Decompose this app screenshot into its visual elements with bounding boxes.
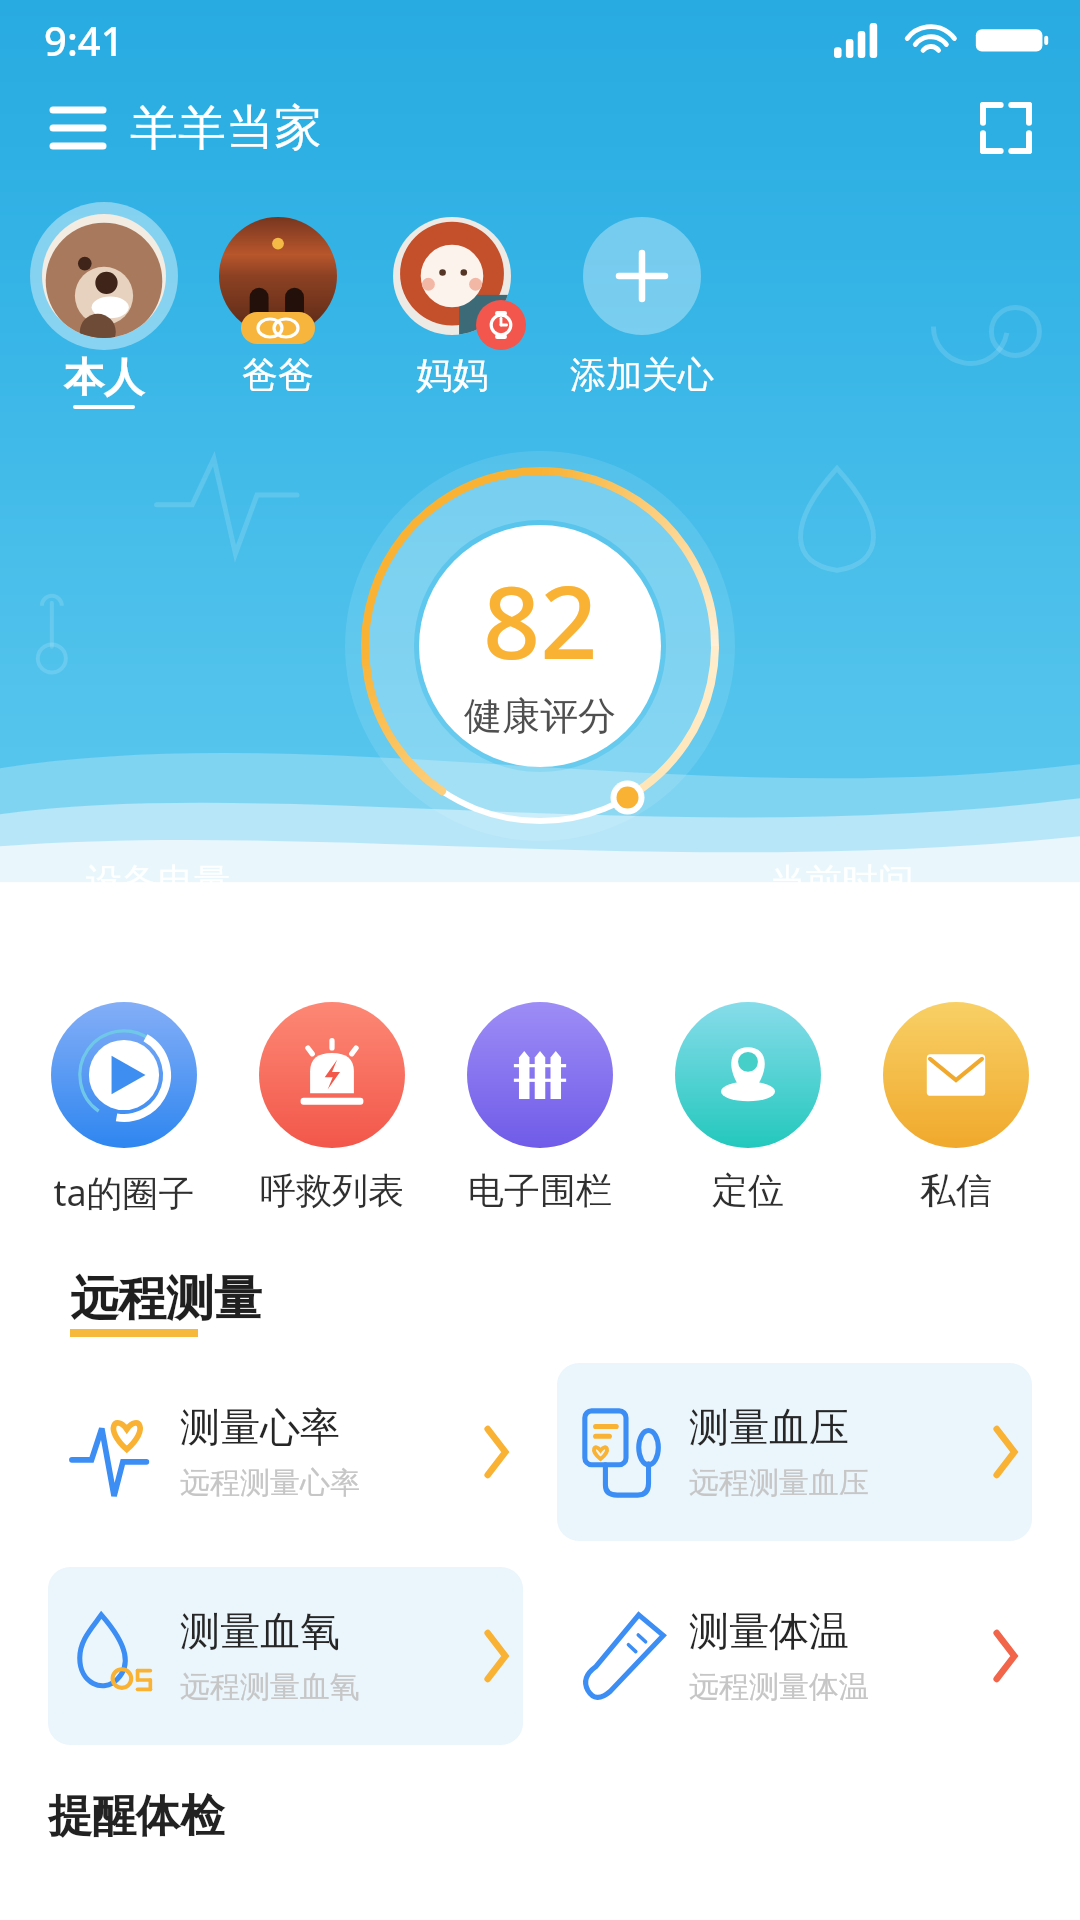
staticText: 远程测量心率 xyxy=(180,1464,360,1502)
staticText: 9:41 xyxy=(44,13,124,67)
staticText: 82 xyxy=(483,552,598,688)
staticText: 当前时间 xyxy=(770,859,914,904)
button[interactable]: Menu xyxy=(40,90,116,166)
staticText: 爸爸 xyxy=(242,352,314,397)
staticText: 健康评分 xyxy=(464,692,616,740)
other: Add care xyxy=(583,217,701,335)
staticText: 测量心率 xyxy=(180,1402,340,1452)
staticText: 私信 xyxy=(920,1168,992,1213)
staticText: 远程测量血压 xyxy=(689,1464,869,1502)
button[interactable]: 呼救列表 xyxy=(228,1002,436,1213)
button[interactable]: Scan QR code xyxy=(968,90,1044,166)
staticText: 呼救列表 xyxy=(260,1168,404,1213)
staticText: 添加关心 xyxy=(570,352,714,397)
button[interactable]: 定位 xyxy=(644,1002,852,1213)
staticText: 测量体温 xyxy=(689,1606,849,1656)
button[interactable]: ta的圈子 xyxy=(20,1002,228,1217)
staticText: 远程测量体温 xyxy=(689,1668,869,1706)
staticText: 远程测量 xyxy=(70,1269,262,1329)
button[interactable]: 测量血氧 xyxy=(48,1567,523,1745)
staticText: ta的圈子 xyxy=(53,1168,195,1217)
staticText: 电子围栏 xyxy=(468,1168,612,1213)
button[interactable]: 测量心率 xyxy=(48,1363,523,1541)
button[interactable]: 妈妈 xyxy=(378,202,526,397)
staticText: 本人 xyxy=(64,352,144,402)
button[interactable]: 爸爸 xyxy=(204,202,352,397)
staticText: 定位 xyxy=(712,1168,784,1213)
staticText: 羊羊当家 xyxy=(130,98,322,158)
staticText: 设备电量 xyxy=(86,859,230,904)
staticText: 测量血压 xyxy=(689,1402,849,1452)
staticText: 远程测量血氧 xyxy=(180,1668,360,1706)
staticText: 妈妈 xyxy=(416,352,488,397)
button[interactable]: 测量血压 xyxy=(557,1363,1032,1541)
staticText: 提醒体检 xyxy=(48,1789,224,1844)
staticText: 测量血氧 xyxy=(180,1606,340,1656)
button[interactable]: Add care xyxy=(552,202,732,397)
button[interactable]: 私信 xyxy=(852,1002,1060,1213)
button[interactable]: 本人 xyxy=(30,202,178,409)
button[interactable]: 测量体温 xyxy=(557,1567,1032,1745)
button[interactable]: 电子围栏 xyxy=(436,1002,644,1213)
